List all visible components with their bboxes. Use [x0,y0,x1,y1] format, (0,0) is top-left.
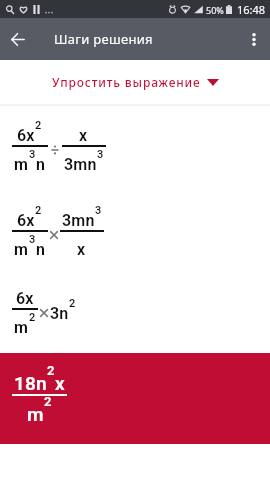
staticText: 2 [29,311,36,324]
staticText: n [36,240,46,259]
staticText: n [36,155,46,174]
staticText: 18n [14,372,47,394]
staticText: x [79,126,88,145]
staticText: 6x [16,289,34,308]
staticText: 3mn [64,155,97,174]
staticText: m [14,155,29,174]
staticText: 2 [35,119,42,132]
staticText: m [14,318,29,337]
button[interactable]: More options [237,18,270,60]
staticText: Шаги решения [54,30,153,48]
staticText: 2 [69,297,76,310]
staticText: 6x [17,126,35,145]
staticText: 16:48 [237,2,266,17]
staticText: m [14,240,29,259]
staticText: 2 [35,204,42,217]
button[interactable]: Back [0,18,36,60]
staticText: 3 [95,204,102,217]
staticText: 3 [97,148,104,161]
staticText: 2 [47,363,55,378]
staticText: m [27,403,44,425]
staticText: 3 [29,148,36,161]
button[interactable]: Упростить выражение [0,60,270,104]
staticText: 3 [29,233,36,246]
staticText: Упростить выражение [52,74,201,90]
staticText: 3n [50,304,69,323]
staticText: 3mn [62,211,95,230]
staticText: 2 [44,394,52,409]
staticText: x [77,240,86,259]
staticText: 50% [206,4,224,16]
staticText: x [55,372,65,394]
staticText: 6x [17,211,35,230]
